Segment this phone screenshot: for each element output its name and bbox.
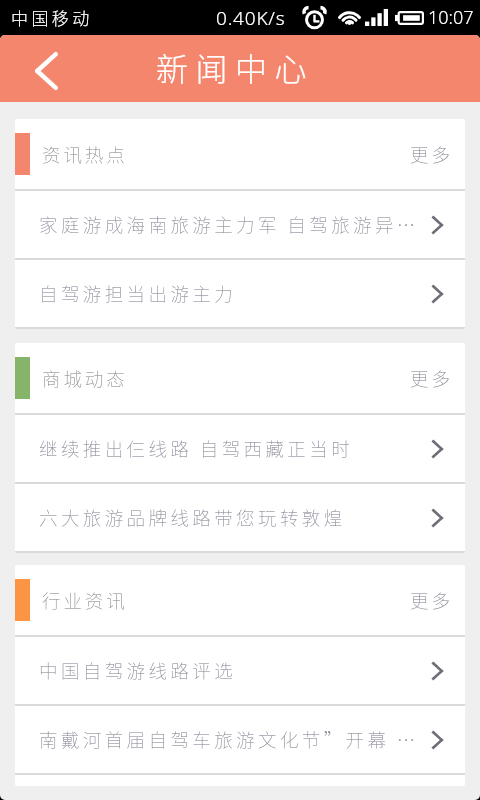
button[interactable]: 南戴河首届自驾车旅游文化节”开幕 盛大开启 <box>15 706 465 773</box>
staticText: 商城动态 <box>42 365 128 392</box>
button[interactable]: 自驾游担当出游主力 <box>15 260 465 327</box>
staticText: 继续推出仨线路 自驾西藏正当时 <box>39 435 423 462</box>
staticText: 资讯热点 <box>42 141 128 168</box>
staticText: 中国移动 <box>11 5 93 30</box>
button[interactable]: 更多 <box>410 343 465 413</box>
button[interactable]: Back <box>0 35 92 102</box>
staticText: 更多 <box>410 587 453 614</box>
button[interactable]: 行业资讯 <box>15 565 410 635</box>
staticText: 更多 <box>410 365 453 392</box>
staticText: 10:07 <box>428 5 474 30</box>
staticText: 家庭游成海南旅游主力军 自驾旅游异军突起 <box>39 211 423 238</box>
button[interactable]: 六大旅游品牌线路带您玩转敦煌 <box>15 484 465 551</box>
button[interactable]: 资讯热点 <box>15 119 410 189</box>
button[interactable]: 家庭游成海南旅游主力军 自驾旅游异军突起 <box>15 191 465 258</box>
button[interactable]: 更多 <box>410 565 465 635</box>
staticText: 六大旅游品牌线路带您玩转敦煌 <box>39 504 423 531</box>
button[interactable]: 更多 <box>410 119 465 189</box>
staticText: 自驾游担当出游主力 <box>39 280 423 307</box>
staticText: 更多 <box>410 141 453 168</box>
staticText: 南戴河首届自驾车旅游文化节”开幕 盛大开启 <box>39 726 423 753</box>
staticText: 0.40K/s <box>216 5 286 31</box>
button[interactable]: 继续推出仨线路 自驾西藏正当时 <box>15 415 465 482</box>
staticText: 中国自驾游线路评选 <box>39 657 423 684</box>
staticText: 新闻中心 <box>156 44 315 90</box>
button[interactable]: 中国自驾游线路评选 <box>15 637 465 704</box>
staticText: 行业资讯 <box>42 587 128 614</box>
button[interactable]: 商城动态 <box>15 343 410 413</box>
